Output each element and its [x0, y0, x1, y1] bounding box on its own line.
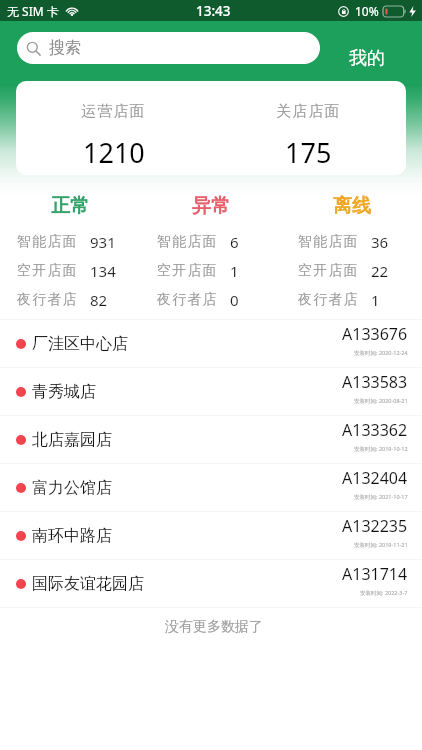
staticText: 安装时间: 2019-10-12	[354, 445, 408, 453]
staticText: 搜索	[49, 38, 81, 58]
staticText: 智能店面	[298, 233, 359, 251]
staticText: 6	[230, 232, 239, 252]
staticText: 36	[371, 232, 389, 252]
staticText: 0	[230, 290, 239, 310]
staticText: 南环中路店	[32, 526, 112, 546]
staticText: 异常	[192, 194, 230, 218]
staticText: 我的	[349, 47, 385, 70]
button[interactable]: 国际友谊花园店	[0, 560, 422, 607]
button[interactable]: 南环中路店	[0, 512, 422, 559]
button[interactable]: 富力公馆店	[0, 464, 422, 511]
staticText: 13:43	[196, 2, 231, 20]
staticText: 空开店面	[298, 262, 359, 280]
staticText: A132404	[342, 467, 408, 489]
staticText: 安装时间: 2022-3-7	[360, 589, 408, 597]
staticText: A133676	[342, 323, 408, 345]
staticText: 安装时间: 2020-12-24	[354, 349, 408, 357]
staticText: 富力公馆店	[32, 478, 112, 498]
staticText: 安装时间: 2021-10-17	[354, 493, 408, 501]
button[interactable]: 北店嘉园店	[0, 416, 422, 463]
staticText: 没有更多数据了	[3, 618, 422, 636]
button[interactable]: 我的	[349, 47, 385, 70]
staticText: 运营店面	[81, 102, 146, 121]
staticText: 1	[230, 261, 239, 281]
staticText: 空开店面	[17, 262, 78, 280]
staticText: 智能店面	[17, 233, 78, 251]
staticText: 安装时间: 2019-11-21	[354, 541, 408, 549]
staticText: 厂洼区中心店	[32, 334, 128, 354]
staticText: 关店店面	[276, 102, 341, 121]
button[interactable]: 运营店面	[16, 81, 406, 175]
staticText: 夜行者店	[298, 291, 359, 309]
staticText: 夜行者店	[157, 291, 218, 309]
button[interactable]: 搜索	[17, 32, 320, 64]
staticText: 国际友谊花园店	[32, 574, 144, 594]
staticText: 1210	[83, 134, 145, 171]
staticText: 安装时间: 2020-08-21	[354, 397, 408, 405]
staticText: 无 SIM 卡	[7, 3, 59, 19]
staticText: A133583	[342, 371, 408, 393]
staticText: 正常	[51, 194, 89, 218]
staticText: A132235	[342, 515, 408, 537]
staticText: A133362	[342, 419, 408, 441]
staticText: 北店嘉园店	[32, 430, 112, 450]
staticText: 空开店面	[157, 262, 218, 280]
staticText: 22	[371, 261, 389, 281]
staticText: 82	[90, 290, 108, 310]
staticText: 智能店面	[157, 233, 218, 251]
button[interactable]: 青秀城店	[0, 368, 422, 415]
staticText: 134	[90, 261, 116, 281]
staticText: 931	[90, 232, 116, 252]
staticText: 10%	[355, 3, 379, 19]
staticText: 175	[285, 134, 332, 171]
staticText: A131714	[342, 563, 408, 585]
staticText: 青秀城店	[32, 382, 96, 402]
button[interactable]: 厂洼区中心店	[0, 320, 422, 367]
staticText: 离线	[333, 194, 371, 218]
staticText: 1	[371, 290, 380, 310]
staticText: 夜行者店	[17, 291, 78, 309]
